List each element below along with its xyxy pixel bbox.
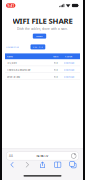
staticText: View Files	[32, 45, 43, 48]
staticText: Android_Zia_Resume.pdf	[6, 68, 30, 71]
button[interactable]: Back	[10, 162, 14, 167]
button[interactable]: Download	[61, 75, 76, 78]
staticText: server_qr.png	[6, 75, 19, 78]
staticText: File	[53, 68, 57, 71]
button[interactable]: Connect	[33, 34, 46, 39]
staticText: .DS_Store	[6, 61, 16, 64]
staticText: Download	[64, 68, 74, 71]
staticText: 192.168.1.57	[36, 154, 48, 158]
button[interactable]: Download	[61, 61, 76, 64]
button[interactable]: Share	[40, 161, 45, 168]
button[interactable]: View Files	[30, 44, 45, 49]
staticText: Name	[6, 55, 12, 58]
button[interactable]: AA	[6, 152, 78, 160]
button[interactable]: Forward	[26, 162, 29, 167]
staticText: Ditch the cables, share with a scan.	[17, 27, 68, 31]
staticText: AA	[9, 154, 13, 158]
staticText: Connect	[36, 35, 43, 37]
staticText: WIFI FILE SHARE	[12, 15, 72, 26]
button[interactable]: Upload Files	[6, 44, 19, 49]
staticText: Upload Files	[6, 45, 19, 48]
staticText: Download	[64, 61, 74, 64]
staticText: 9:41	[7, 3, 14, 8]
button[interactable]: Bookmarks	[54, 162, 61, 167]
staticText: Action	[65, 55, 73, 58]
staticText: Type	[53, 55, 58, 58]
staticText: File	[53, 75, 57, 78]
staticText: File	[53, 61, 57, 64]
button[interactable]: Download	[61, 68, 76, 71]
button[interactable]: Tabs	[70, 161, 76, 168]
staticText: Download	[64, 75, 74, 78]
